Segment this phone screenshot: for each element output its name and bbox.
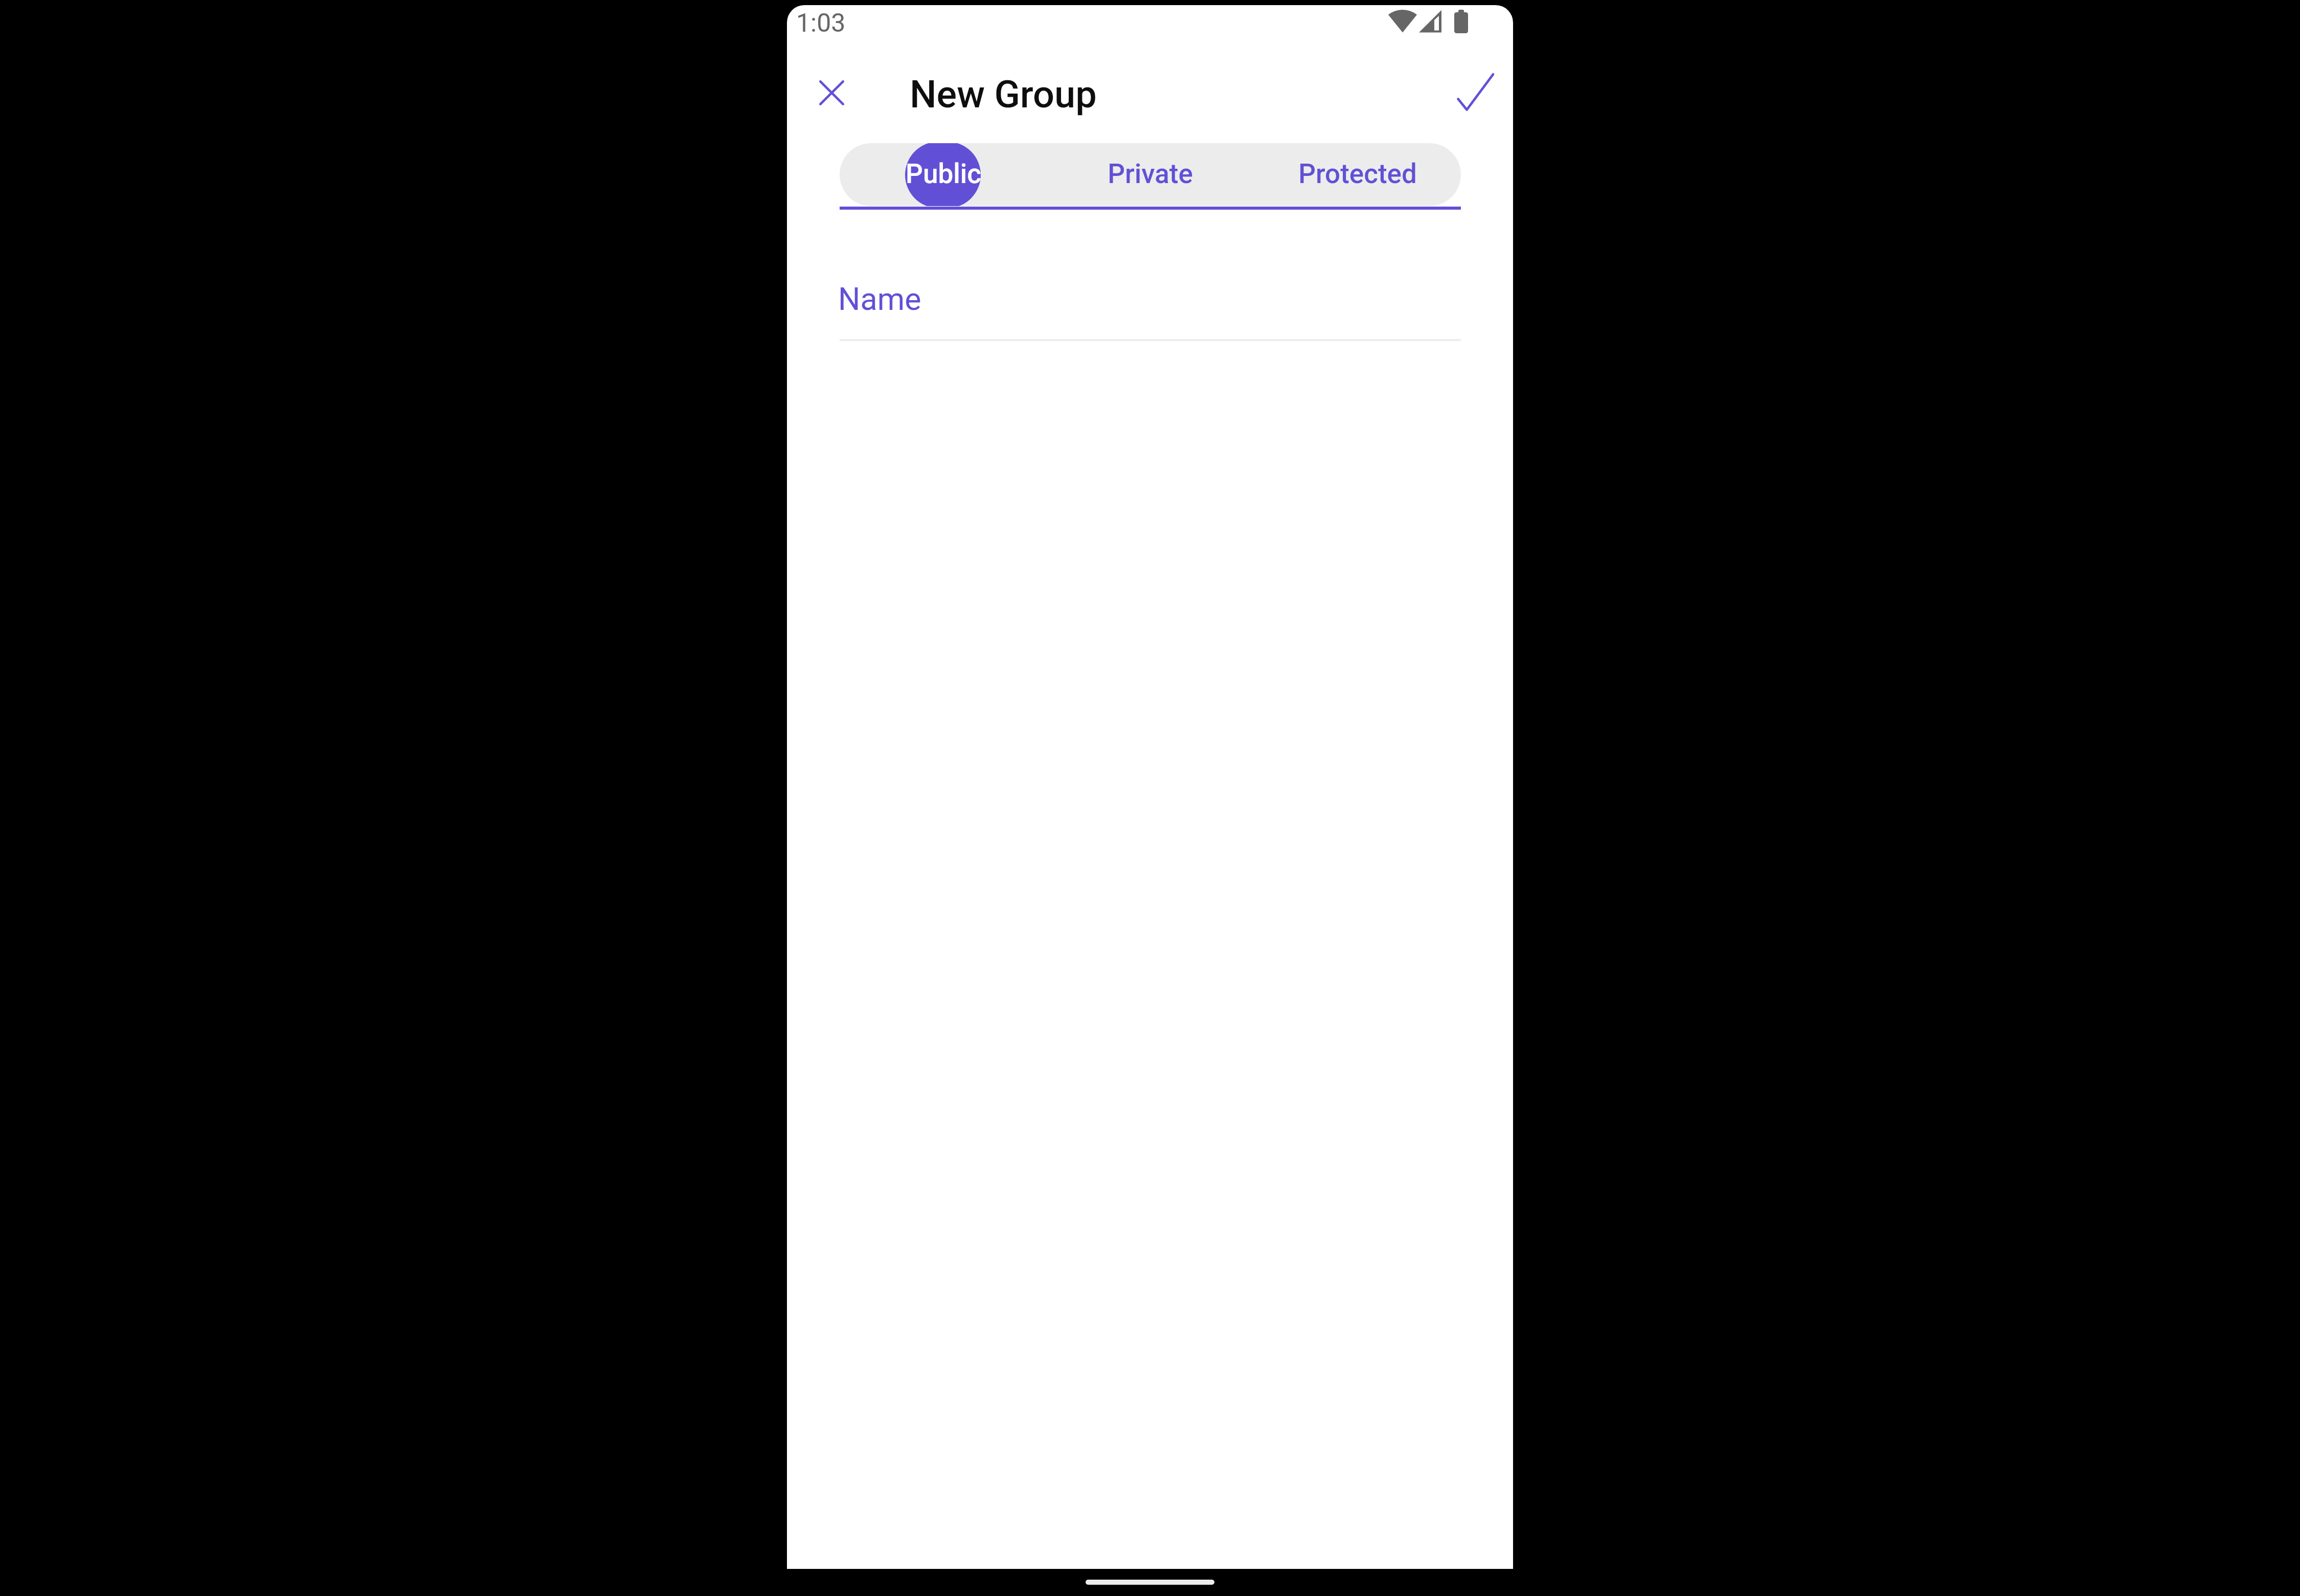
staticText: Public	[906, 158, 981, 190]
staticText: New Group	[910, 72, 1097, 117]
button[interactable]: Close	[801, 62, 862, 123]
staticText: 1:03	[796, 8, 846, 38]
button[interactable]: Public	[840, 143, 1047, 206]
staticText: Name	[838, 281, 921, 317]
button[interactable]: Done	[1445, 61, 1506, 123]
staticText: Private	[1108, 158, 1193, 190]
button[interactable]: Private	[1047, 143, 1254, 206]
staticText: Protected	[1298, 158, 1417, 190]
button[interactable]: Protected	[1254, 143, 1461, 206]
